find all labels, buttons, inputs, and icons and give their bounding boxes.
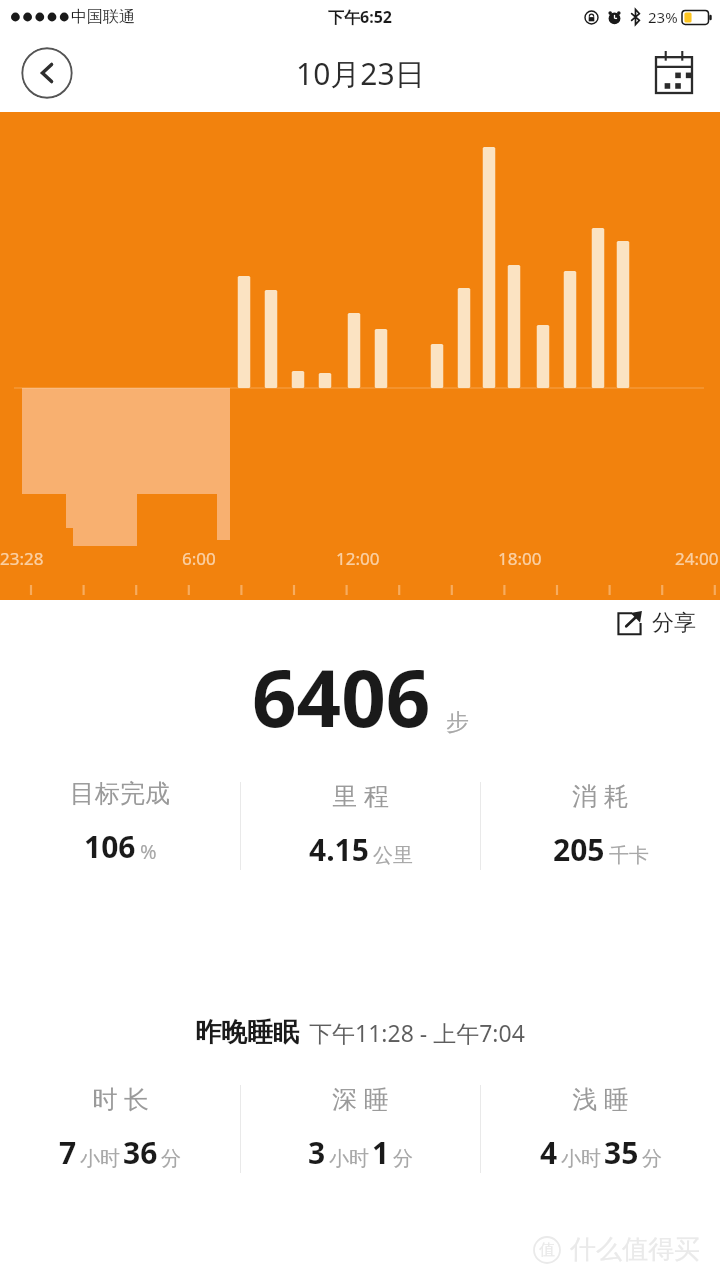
staticText: 23%: [648, 7, 678, 27]
staticText: 时 长: [92, 1081, 149, 1115]
staticText: 36: [123, 1132, 158, 1173]
button[interactable]: 分享: [610, 604, 702, 642]
button[interactable]: 时 长: [0, 1081, 240, 1177]
button[interactable]: 消 耗: [481, 778, 720, 874]
staticText: 小时: [329, 1146, 369, 1171]
staticText: 205: [553, 829, 605, 870]
staticText: 7: [59, 1132, 77, 1173]
button[interactable]: Calendar: [648, 47, 700, 99]
staticText: 小时: [80, 1146, 120, 1171]
staticText: 下午6:52: [328, 6, 392, 28]
button[interactable]: 浅 睡: [481, 1081, 720, 1177]
staticText: 浅 睡: [572, 1081, 629, 1115]
staticText: 23:28: [0, 547, 44, 570]
button[interactable]: 里 程: [241, 778, 480, 874]
staticText: 分: [642, 1146, 662, 1171]
staticText: 24:00: [675, 547, 719, 570]
staticText: 深 睡: [332, 1081, 389, 1115]
staticText: 12:00: [336, 547, 380, 570]
staticText: 公里: [373, 843, 413, 868]
staticText: 1: [372, 1132, 390, 1173]
staticText: 步: [446, 708, 469, 737]
staticText: 下午11:28 - 上午7:04: [309, 1017, 525, 1048]
staticText: 6406: [252, 644, 431, 750]
staticText: 什么值得买: [570, 1233, 700, 1266]
button[interactable]: 深 睡: [241, 1081, 480, 1177]
staticText: 18:00: [498, 547, 542, 570]
staticText: 小时: [561, 1146, 601, 1171]
staticText: 分享: [652, 609, 696, 637]
staticText: 106: [84, 826, 136, 867]
staticText: 分: [393, 1146, 413, 1171]
staticText: 4.15: [309, 829, 369, 870]
staticText: 值: [539, 1240, 555, 1260]
staticText: 里 程: [332, 778, 389, 812]
staticText: 3: [308, 1132, 326, 1173]
staticText: 35: [604, 1132, 639, 1173]
staticText: 昨晚睡眠: [195, 1016, 299, 1049]
staticText: 4: [540, 1132, 558, 1173]
staticText: 6:00: [182, 547, 216, 570]
button[interactable]: Back: [21, 47, 73, 99]
staticText: %: [140, 838, 157, 865]
staticText: 目标完成: [70, 778, 170, 809]
staticText: 千卡: [609, 843, 649, 868]
staticText: 10月23日: [296, 53, 425, 94]
staticText: 分: [161, 1146, 181, 1171]
staticText: 中国联通: [71, 7, 135, 27]
button[interactable]: 目标完成: [0, 778, 240, 874]
staticText: 消 耗: [572, 778, 629, 812]
